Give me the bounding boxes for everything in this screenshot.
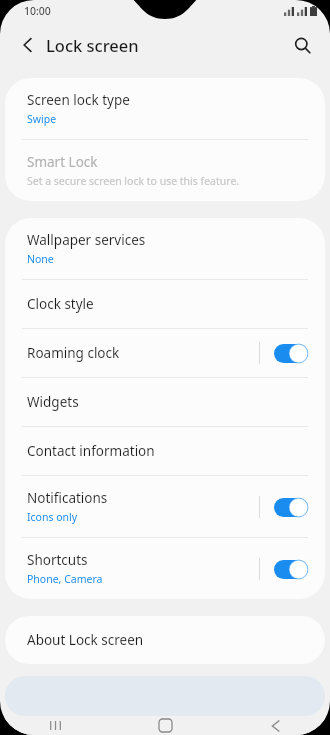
staticText: Notifications bbox=[27, 489, 108, 507]
button[interactable]: Screen lock type bbox=[5, 78, 325, 139]
staticText: Screen lock type bbox=[27, 91, 130, 109]
button[interactable]: Back bbox=[220, 716, 330, 735]
button[interactable]: Back bbox=[11, 28, 45, 62]
button[interactable]: Smart Lock bbox=[5, 140, 325, 201]
staticText: Contact information bbox=[27, 442, 311, 460]
button[interactable]: Search bbox=[285, 28, 319, 62]
staticText: Lock screen bbox=[46, 34, 139, 56]
button[interactable]: About Lock screen bbox=[5, 616, 325, 664]
button[interactable]: Toggle bbox=[271, 339, 311, 367]
staticText: Wallpaper services bbox=[27, 231, 146, 249]
staticText: None bbox=[27, 252, 54, 266]
button[interactable]: Recent apps bbox=[0, 716, 110, 735]
staticText: Icons only bbox=[27, 510, 78, 524]
staticText: Clock style bbox=[27, 295, 311, 313]
button[interactable]: Roaming clock bbox=[5, 329, 325, 377]
button[interactable]: Toggle bbox=[271, 493, 311, 521]
staticText: Smart Lock bbox=[27, 153, 98, 171]
staticText: Shortcuts bbox=[27, 551, 88, 569]
button[interactable]: Toggle bbox=[271, 555, 311, 583]
staticText: Widgets bbox=[27, 393, 311, 411]
staticText: Set a secure screen lock to use this fea… bbox=[27, 174, 240, 188]
button[interactable]: Clock style bbox=[5, 280, 325, 328]
staticText: 10:00 bbox=[24, 4, 51, 18]
staticText: Roaming clock bbox=[27, 344, 259, 362]
staticText: About Lock screen bbox=[27, 631, 311, 649]
button[interactable]: Home bbox=[110, 716, 220, 735]
button[interactable]: Wallpaper services bbox=[5, 218, 325, 279]
button[interactable]: Shortcuts bbox=[5, 538, 325, 599]
button[interactable]: Contact information bbox=[5, 427, 325, 475]
button[interactable]: Widgets bbox=[5, 378, 325, 426]
button[interactable]: Notifications bbox=[5, 476, 325, 537]
staticText: Phone, Camera bbox=[27, 572, 103, 586]
staticText: Swipe bbox=[27, 112, 57, 126]
